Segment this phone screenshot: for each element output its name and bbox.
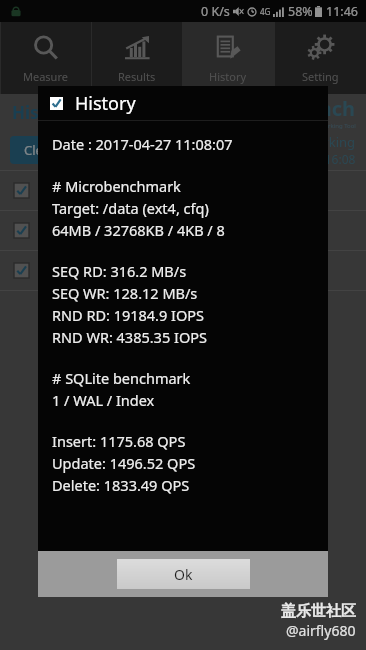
staticText: Measure: [23, 69, 68, 84]
staticText: 2017-04-27: [42, 261, 110, 279]
staticText: Storage Benchmarking: [215, 133, 356, 151]
staticText: 2017-04-27: [42, 181, 110, 199]
staticText: # Microbenchmark: [52, 176, 181, 196]
button[interactable]: Setting: [274, 22, 366, 94]
staticText: 盖乐世社区: [281, 602, 356, 621]
staticText: History: [209, 69, 247, 84]
staticText: @airfly680: [286, 621, 356, 640]
staticText: SEQ RD: 316.2 MB/s: [52, 261, 187, 281]
staticText: 1 / WAL / Index: [52, 390, 155, 410]
staticText: RND WR: 4385.35 IOPS: [52, 327, 207, 347]
button[interactable]: Ok: [117, 559, 250, 589]
staticText: RND RD: 19184.9 IOPS: [52, 305, 205, 325]
staticText: # SQLite benchmark: [52, 368, 191, 388]
staticText: 2017-04-27: [42, 221, 110, 239]
staticText: 64MB / 32768KB / 4KB / 8: [52, 220, 225, 240]
staticText: Results: [118, 69, 156, 84]
staticText: AndroBench: [233, 95, 356, 122]
staticText: Setting: [302, 69, 339, 84]
button[interactable]: 2017-04-27: [0, 170, 366, 210]
button[interactable]: Results: [91, 22, 182, 94]
staticText: SEQ WR: 128.12 MB/s: [52, 283, 198, 303]
staticText: History: [12, 101, 74, 124]
staticText: 4G: [260, 6, 271, 17]
staticText: Insert: 1175.68 QPS: [52, 431, 186, 451]
staticText: Update: 1496.52 QPS: [52, 453, 196, 473]
staticText: Delete: 1833.49 QPS: [52, 475, 190, 495]
staticText: Clear: [24, 141, 56, 159]
staticText: Target: /data (ext4, cfq): [52, 198, 209, 218]
button[interactable]: Measure: [0, 22, 91, 94]
staticText: 11:46: [326, 3, 358, 20]
staticText: Ok: [174, 565, 193, 584]
button[interactable]: 2017-04-27: [0, 210, 366, 250]
other: Secure lock: [10, 5, 22, 17]
staticText: History: [75, 91, 136, 116]
button[interactable]: 2017-04-27: [0, 250, 366, 290]
staticText: Date : 2017-04-27 11:08:07: [52, 134, 233, 154]
button[interactable]: Clear: [10, 136, 70, 164]
staticText: 0 K/s: [201, 3, 230, 20]
staticText: Storage Benchmarking Tool: [278, 122, 356, 130]
staticText: 58%: [288, 3, 313, 20]
staticText: 2017-04-27 16:08: [259, 151, 356, 167]
button[interactable]: History: [182, 22, 274, 94]
